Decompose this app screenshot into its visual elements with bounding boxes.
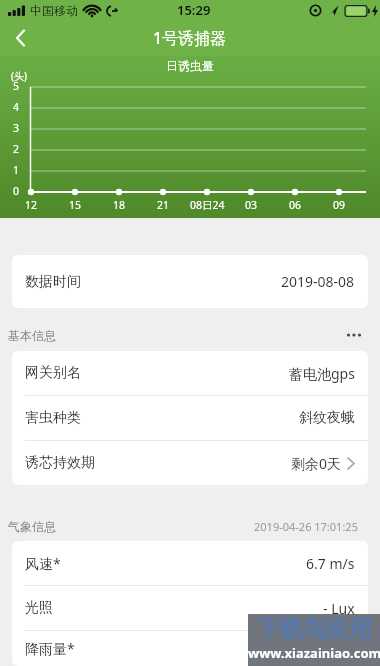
staticText: 诱芯持效期	[25, 454, 95, 472]
staticText: 1号诱捕器	[153, 27, 227, 49]
staticText: 剩余0天	[291, 454, 342, 473]
staticText: 6.7 m/s	[306, 554, 355, 573]
staticText: 2019-08-08	[281, 272, 355, 291]
button[interactable]: 网关别名	[12, 351, 368, 395]
staticText: 3	[13, 121, 20, 135]
staticText: 09	[333, 198, 346, 212]
staticText: 中国移动	[30, 3, 78, 18]
staticText: 0	[13, 184, 20, 198]
staticText: 降雨量*	[25, 639, 75, 658]
staticText: 12	[25, 198, 38, 212]
staticText: (头)	[11, 69, 27, 83]
staticText: 06	[289, 198, 302, 212]
staticText: 5	[13, 79, 20, 93]
staticText: 2	[13, 142, 20, 156]
staticText: 下载鸟应用	[257, 615, 372, 644]
button[interactable]	[0, 20, 40, 56]
button[interactable]: 害虫种类	[12, 396, 368, 440]
staticText: 风速*	[25, 554, 61, 573]
staticText: 03	[245, 198, 258, 212]
staticText: www.xiazainiao.com	[248, 644, 380, 662]
staticText: 气象信息	[8, 519, 56, 533]
staticText: 4	[13, 100, 20, 114]
staticText: 1	[13, 163, 20, 177]
staticText: 2019-04-26 17:01:25	[254, 519, 358, 533]
staticText: 15:29	[177, 1, 211, 19]
staticText: 15	[69, 198, 82, 212]
staticText: - Lux	[323, 599, 355, 618]
staticText: 日诱虫量	[166, 58, 214, 73]
button[interactable]: 降雨量*	[12, 631, 368, 666]
button[interactable]: 诱芯持效期	[12, 441, 368, 485]
staticText: 网关别名	[25, 364, 81, 382]
staticText: 害虫种类	[25, 409, 81, 427]
staticText: 18	[113, 198, 126, 212]
staticText: 基本信息	[8, 328, 56, 342]
button[interactable]: 光照	[12, 586, 368, 630]
staticText: 21	[157, 198, 170, 212]
staticText: 08日24	[190, 198, 225, 212]
button[interactable]: 风速*	[12, 541, 368, 585]
staticText: 蓄电池gps	[289, 364, 355, 383]
staticText: 数据时间	[25, 273, 81, 291]
button[interactable]: 下载鸟应用	[248, 614, 380, 666]
staticText: 光照	[25, 599, 53, 617]
button[interactable]	[346, 332, 362, 338]
staticText: 斜纹夜蛾	[299, 409, 355, 427]
button[interactable]: 数据时间	[12, 255, 368, 308]
